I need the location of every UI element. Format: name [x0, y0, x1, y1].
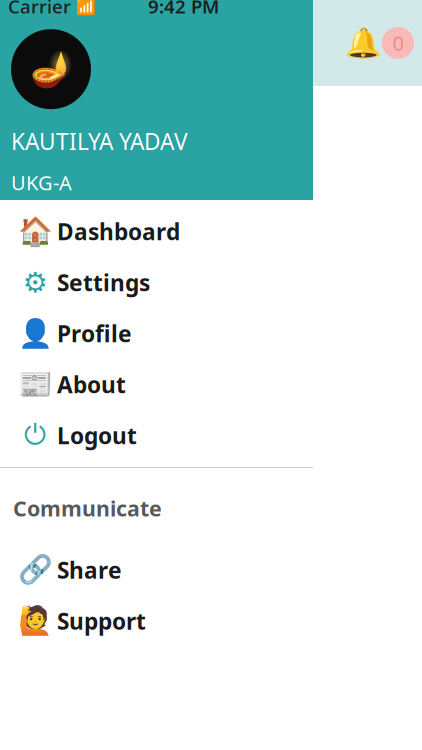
staticText: Track Transport — [147, 216, 274, 239]
staticText: Communicate — [13, 494, 162, 522]
staticText: 🚚 — [186, 164, 236, 210]
button[interactable]: 🙋 — [0, 595, 313, 646]
button[interactable]: 📰 — [0, 359, 313, 410]
staticText: ⏻ — [24, 422, 46, 449]
staticText: Carrier — [8, 0, 71, 19]
staticText: 🔗 — [17, 554, 52, 586]
button[interactable]: 🏠 — [0, 206, 313, 257]
button[interactable]: 🔗 — [0, 544, 313, 595]
staticText: 🪔 — [29, 49, 72, 89]
staticText: UKG-A — [11, 169, 72, 196]
staticText: 9:42 PM — [148, 0, 219, 19]
staticText: KAUTILYA YADAV — [11, 126, 188, 156]
staticText: 📶 — [76, 0, 96, 15]
button[interactable]: ⚙ — [0, 257, 313, 308]
staticText: Dashboard — [57, 216, 180, 246]
button[interactable]: 👤 — [0, 308, 313, 359]
staticText: ⚙ — [22, 267, 47, 298]
staticText: Logout — [57, 420, 137, 450]
staticText: 0 — [392, 30, 403, 56]
staticText: 🏠 — [17, 215, 52, 247]
staticText: Support — [57, 606, 146, 636]
button[interactable]: ⏻ — [0, 410, 313, 461]
staticText: 🔔 — [345, 26, 382, 60]
staticText: Profile — [57, 318, 132, 348]
staticText: Settings — [57, 267, 150, 297]
staticText: About — [57, 369, 126, 399]
staticText: 👤 — [17, 317, 52, 349]
staticText: 📰 — [17, 368, 52, 400]
staticText: Share — [57, 555, 122, 585]
staticText: 🙋 — [17, 605, 52, 637]
